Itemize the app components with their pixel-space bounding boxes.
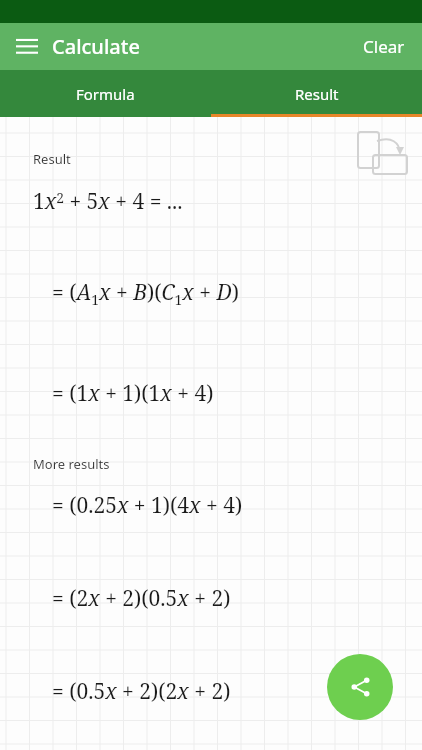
staticText: Result [33,150,71,168]
staticText: 1x2 + 5x + 4 = ... [33,187,183,216]
staticText: = (0.25x + 1)(4x + 4) [52,491,243,520]
button[interactable]: Rotate screen [352,126,410,176]
staticText: Calculate [52,33,140,60]
staticText: = (0.5x + 2)(2x + 2) [52,677,231,706]
staticText: Result [295,84,339,104]
button[interactable]: Result [211,70,422,117]
staticText: Clear [363,35,405,58]
button[interactable]: Clear [346,25,422,68]
button[interactable]: Open navigation menu [10,30,44,64]
button[interactable]: Formula [0,70,211,117]
staticText: = (A1x + B)(C1x + D) [52,278,239,309]
staticText: = (1x + 1)(1x + 4) [52,379,214,408]
staticText: Formula [76,84,135,104]
staticText: = (2x + 2)(0.5x + 2) [52,584,231,613]
button[interactable]: Share [327,654,393,720]
staticText: More results [33,455,110,473]
